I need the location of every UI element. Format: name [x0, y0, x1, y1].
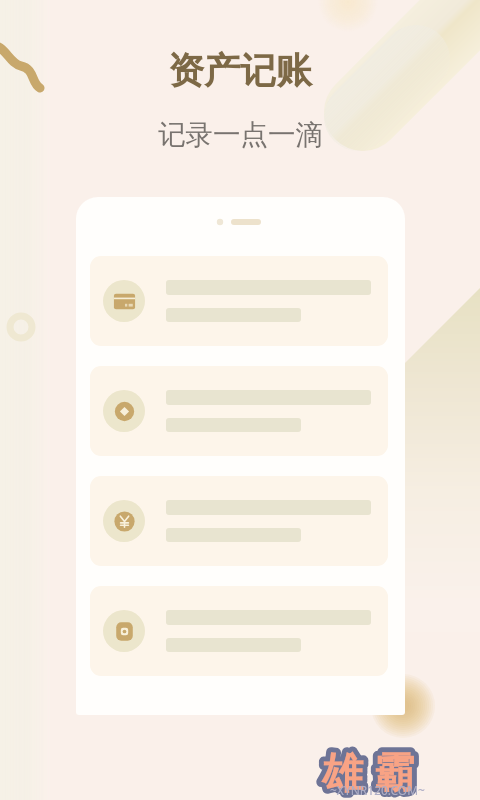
button[interactable]: Account icon: [90, 586, 388, 676]
staticText: ~XYNR120.COM~: [330, 782, 425, 798]
button[interactable]: Account icon: [90, 366, 388, 456]
other: Account icon: [103, 610, 145, 652]
staticText: 记录一点一滴: [158, 118, 323, 153]
staticText: 雄 霸: [322, 743, 415, 799]
button[interactable]: Account icon: [90, 256, 388, 346]
button[interactable]: Account icon: [90, 476, 388, 566]
other: Account icon: [103, 280, 145, 322]
staticText: 资产记账: [168, 48, 312, 93]
other: Account icon: [103, 500, 145, 542]
other: Account icon: [103, 390, 145, 432]
staticText: 雄 霸: [322, 743, 415, 799]
